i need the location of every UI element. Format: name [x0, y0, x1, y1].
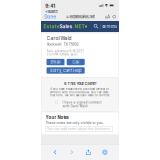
button[interactable]: Estate: [43, 24, 87, 29]
staticText: 9:41: [45, 3, 55, 9]
staticText: Estate: [43, 24, 59, 29]
staticText: Sales: [59, 24, 72, 29]
staticText: These notes are only visible to you.: [45, 121, 103, 125]
button[interactable]: menu: [103, 24, 117, 29]
staticText: A: [107, 14, 110, 19]
staticText: menu: [107, 24, 117, 29]
button[interactable]: Email: [46, 59, 64, 65]
button[interactable]: Forward: [67, 147, 76, 158]
staticText: If you have established a contract (verb…: [50, 87, 110, 97]
staticText: estatesales.net: [69, 14, 94, 19]
button[interactable]: Done: [44, 14, 56, 19]
staticText: You can add notes about this business: [47, 127, 110, 131]
staticText: Rockwall, TX 75032: [46, 42, 78, 46]
staticText: Your Notes: [45, 115, 68, 120]
button[interactable]: Share: [84, 147, 93, 158]
button[interactable]: Page settings: [105, 14, 110, 19]
button[interactable]: You can add notes about this business: [45, 126, 112, 132]
staticText: Sorry, Can't Help: [50, 68, 81, 73]
staticText: Is This Your Client?: [63, 81, 96, 86]
button[interactable]: Reload: [110, 15, 116, 18]
staticText: Search: [47, 9, 58, 14]
staticText: I have a signed contract with Carol Wald: [62, 101, 101, 108]
button[interactable]: Sorry, Can't Help: [46, 67, 85, 74]
staticText: A: [105, 15, 107, 19]
button[interactable]: Tabs: [100, 147, 109, 158]
button[interactable]: Back: [51, 147, 60, 158]
button[interactable]: Call: [67, 59, 85, 65]
staticText: Sale submitted 6/14/2021 3:01 PM (Offsit…: [46, 49, 83, 56]
staticText: Call: [72, 60, 79, 64]
staticText: Done: [44, 14, 56, 19]
staticText: Carol Wald: [46, 35, 71, 41]
staticText: Email: [50, 60, 60, 64]
button[interactable]: Search: [94, 23, 99, 29]
staticText: .NET: [72, 24, 84, 29]
